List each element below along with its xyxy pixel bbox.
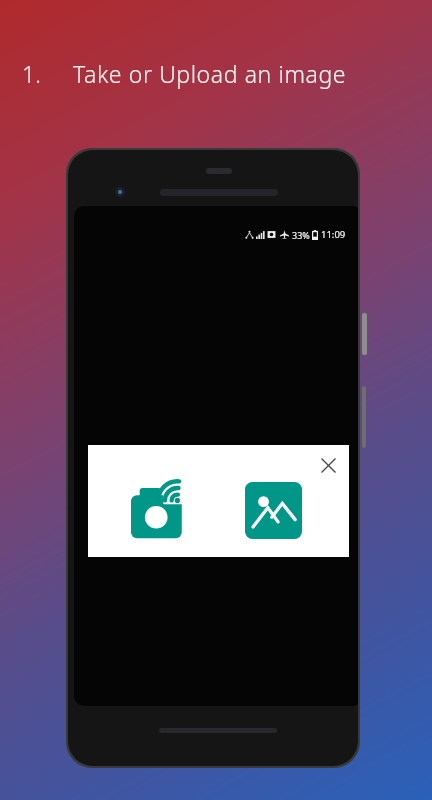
- button[interactable]: Close: [317, 454, 339, 476]
- button[interactable]: Take photo with camera: [130, 480, 190, 540]
- staticText: 33%: [292, 229, 310, 241]
- button[interactable]: Upload image from gallery: [244, 481, 302, 539]
- staticText: Take or Upload an image: [73, 58, 347, 89]
- staticText: 11:09: [321, 228, 346, 241]
- staticText: 1.: [22, 58, 41, 89]
